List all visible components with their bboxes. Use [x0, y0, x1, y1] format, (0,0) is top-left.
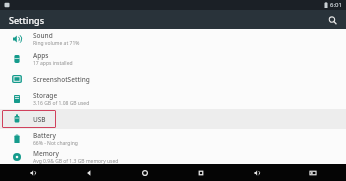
button[interactable]: ScreenshotSetting	[0, 69, 346, 89]
staticText: Ring volume at 71%	[33, 40, 80, 47]
button[interactable]: Screenshot	[290, 164, 336, 181]
button[interactable]: Volume up	[234, 164, 280, 181]
staticText: Settings	[9, 14, 45, 26]
button[interactable]: Battery	[0, 129, 346, 149]
staticText: Sound	[33, 31, 53, 40]
staticText: USB	[33, 115, 46, 124]
button[interactable]: Volume down	[10, 164, 56, 181]
button[interactable]: Home	[122, 164, 168, 181]
staticText: ScreenshotSetting	[33, 75, 90, 84]
button[interactable]: Back	[66, 164, 112, 181]
button[interactable]: USB	[0, 109, 346, 129]
staticText: 66% - Not charging	[33, 140, 78, 147]
staticText: Memory	[33, 149, 60, 158]
staticText: Storage	[33, 91, 58, 100]
staticText: Battery	[33, 131, 56, 140]
staticText: 17 apps installed	[33, 60, 73, 67]
button[interactable]: Recent apps	[178, 164, 224, 181]
staticText: 6:01	[330, 1, 342, 9]
staticText: Avg 0.9& GB of 1.3 GB memory used	[33, 158, 119, 164]
button[interactable]: Memory	[0, 149, 346, 164]
staticText: Apps	[33, 51, 49, 60]
button[interactable]: Sound	[0, 29, 346, 49]
staticText: 3.16 GB of 1.08 GB used	[33, 100, 90, 107]
button[interactable]: Search	[325, 13, 339, 27]
button[interactable]: Storage	[0, 89, 346, 109]
button[interactable]: Apps	[0, 49, 346, 69]
